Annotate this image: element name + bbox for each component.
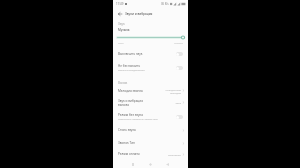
staticText: Звонок Тип <box>118 141 182 145</box>
button[interactable]: Не беспокоить <box>113 61 188 74</box>
staticText: Мелодия звонка <box>118 89 165 93</box>
staticText: Режим без звука <box>118 113 143 117</box>
staticText: Музыка <box>118 28 130 32</box>
staticText: Громко <box>174 41 183 44</box>
button[interactable]: Главный экран <box>142 159 159 168</box>
staticText: Стандартная мелодия <box>165 88 181 94</box>
button[interactable]: Выключить звук <box>113 48 188 59</box>
button[interactable]: Назад <box>159 159 176 168</box>
button[interactable]: Звук и вибрация вызова <box>113 97 188 108</box>
staticText: Выключить звук <box>118 52 143 56</box>
staticText: Звук <box>118 22 125 26</box>
button[interactable]: Режим без звука <box>113 110 188 123</box>
staticText: Звук и вибрация вызова <box>118 99 175 107</box>
staticText: Режим оплаты <box>118 152 168 156</box>
staticText: Звонки и уведомления <box>118 68 145 71</box>
button[interactable]: Недавние приложения <box>124 159 142 168</box>
staticText: Звук <box>175 101 181 104</box>
staticText: Уменьшать громкость звонка при <box>118 117 158 120</box>
button[interactable]: Мелодия звонка <box>113 85 188 96</box>
staticText: 36 K/s <box>161 2 169 6</box>
staticText: Выключен <box>168 153 181 156</box>
staticText: Звуки и вибрация <box>125 12 153 16</box>
button[interactable]: Громкость <box>113 34 188 41</box>
button[interactable]: Звонок Тип <box>113 138 188 148</box>
staticText: Стиль звука <box>118 128 182 132</box>
staticText: 17:49 <box>116 2 124 6</box>
button[interactable]: Назад <box>116 10 123 17</box>
button[interactable]: Режим оплаты <box>113 149 188 159</box>
staticText: Тихо <box>118 41 124 44</box>
staticText: Не беспокоить <box>118 64 141 68</box>
button[interactable]: Стиль звука <box>113 125 188 135</box>
staticText: Вызов <box>118 81 128 85</box>
